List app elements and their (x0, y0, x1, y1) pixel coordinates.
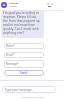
staticText: Chatbot (9, 2, 19, 5)
staticText: Name* (6, 44, 16, 48)
button[interactable]: Name* (6, 43, 42, 49)
button[interactable]: Chatbot avatar (1, 2, 7, 8)
button[interactable]: Type your message... (5, 86, 53, 93)
button[interactable]: Send (4, 70, 44, 76)
staticText: Type your message... (5, 88, 34, 92)
staticText: Message* (6, 62, 19, 66)
staticText: Email* (6, 53, 15, 57)
staticText: Support (9, 5, 17, 8)
button[interactable]: Restart conversation (46, 2, 50, 6)
button[interactable]: Email* (6, 52, 42, 58)
button[interactable]: Message* (6, 60, 42, 68)
staticText: Send (20, 71, 28, 75)
staticText: I'm glad you're willing to improve. Plea… (3, 11, 42, 35)
button[interactable]: Minimize chat (48, 6, 51, 7)
button[interactable]: Close chat (50, 2, 54, 6)
staticText: Powered by Chatbot (21, 95, 44, 98)
